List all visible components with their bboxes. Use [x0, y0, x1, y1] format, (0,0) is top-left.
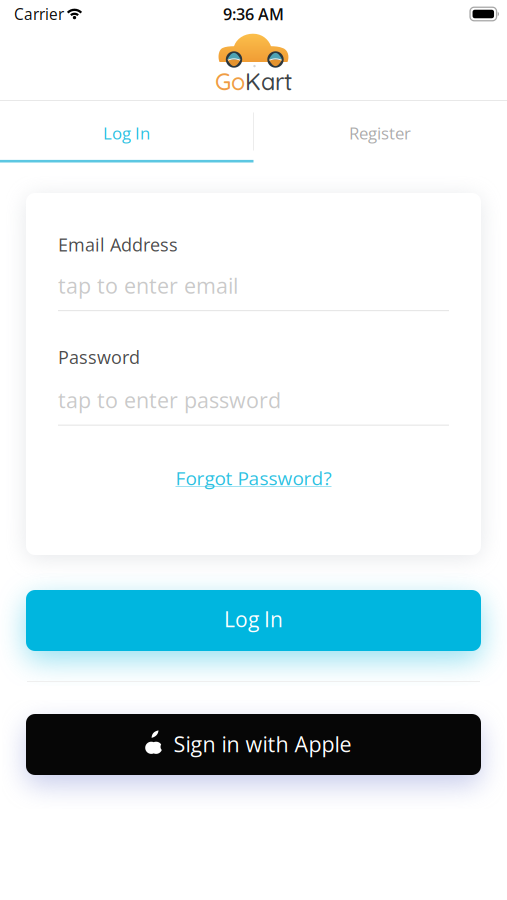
staticText: Register [349, 122, 411, 144]
staticText: Go [215, 67, 245, 96]
button[interactable]: tap to enter password [58, 385, 449, 426]
button[interactable]: Forgot Password? [175, 465, 331, 491]
staticText: tap to enter password [58, 385, 281, 415]
staticText: 9:36 AM [223, 3, 284, 25]
button[interactable]: Log In [26, 590, 481, 651]
staticText: Kart [245, 67, 292, 96]
button[interactable]: tap to enter email [58, 271, 449, 311]
staticText: Password [58, 345, 140, 369]
staticText: Sign in with Apple [173, 729, 351, 759]
staticText: Log In [103, 122, 150, 144]
staticText: Carrier [14, 3, 64, 24]
button[interactable]: Sign in with Apple [26, 714, 481, 775]
button[interactable]: Log In [0, 101, 253, 162]
staticText: Log In [224, 605, 283, 633]
staticText: tap to enter email [58, 271, 238, 300]
staticText: Email Address [58, 232, 178, 257]
button[interactable]: Register [253, 101, 507, 162]
staticText: Forgot Password? [175, 465, 331, 491]
